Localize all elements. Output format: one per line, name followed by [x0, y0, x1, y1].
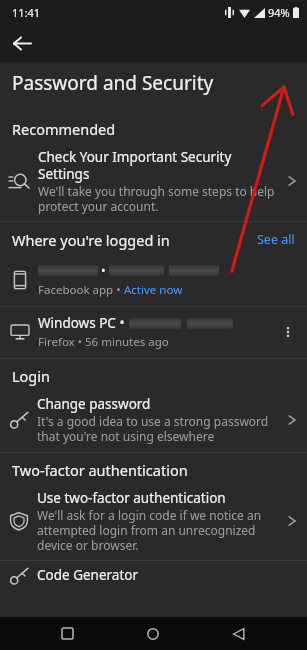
- button[interactable]: Use two-factor authentication: [0, 485, 307, 560]
- staticText: We'll take you through some steps to hel…: [38, 183, 275, 214]
- staticText: Password and Security: [12, 70, 214, 96]
- button[interactable]: Home: [135, 617, 171, 650]
- button[interactable]: Recent apps: [49, 617, 85, 650]
- staticText: Check Your Important Security Settings: [38, 148, 232, 183]
- staticText: Two-factor authentication: [12, 460, 188, 480]
- button[interactable]: Back: [221, 617, 257, 650]
- staticText: Use two-factor authentication: [37, 489, 226, 507]
- staticText: See all: [257, 231, 295, 248]
- button[interactable]: More options: [273, 317, 303, 347]
- staticText: Change password: [37, 395, 151, 413]
- staticText: Login: [12, 366, 50, 386]
- button[interactable]: Code Generator: [0, 561, 307, 598]
- staticText: 94%: [268, 5, 290, 20]
- staticText: Where you're logged in: [12, 230, 170, 250]
- button[interactable]: Check Your Important Security Settings: [0, 144, 307, 221]
- staticText: Active now: [124, 282, 183, 298]
- button[interactable]: Change password: [0, 391, 307, 452]
- staticText: Firefox • 56 minutes ago: [38, 334, 169, 350]
- staticText: •: [101, 262, 106, 278]
- button[interactable]: •: [0, 255, 307, 306]
- staticText: We'll ask for a login code if we notice …: [37, 507, 262, 553]
- staticText: Windows PC •: [38, 314, 125, 332]
- staticText: 11:41: [12, 5, 41, 20]
- staticText: Recommended: [12, 119, 116, 139]
- staticText: Facebook app •: [38, 282, 124, 298]
- button[interactable]: See all: [255, 229, 297, 250]
- staticText: Code Generator: [37, 566, 139, 584]
- button[interactable]: Back: [6, 27, 38, 59]
- button[interactable]: Windows PC •: [0, 307, 307, 358]
- staticText: It's a good idea to use a strong passwor…: [37, 413, 269, 444]
